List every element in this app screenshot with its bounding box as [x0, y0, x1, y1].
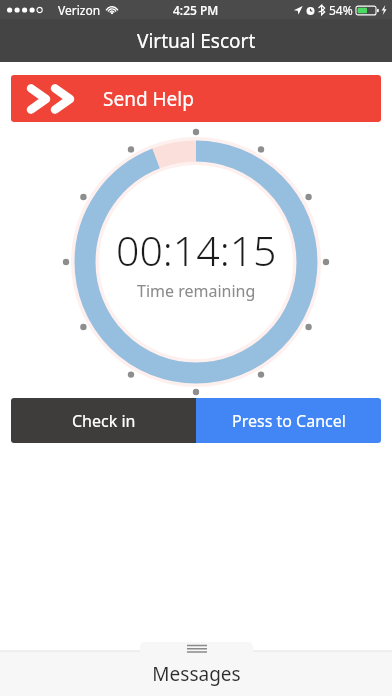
- staticText: Send Help: [103, 86, 194, 112]
- staticText: Check in: [72, 410, 136, 432]
- staticText: Press to Cancel: [232, 410, 346, 432]
- staticText: 00:14:15: [116, 222, 277, 278]
- staticText: Verizon: [58, 2, 101, 18]
- button[interactable]: Check in: [11, 398, 196, 443]
- staticText: Time remaining: [137, 280, 256, 302]
- button[interactable]: Messages: [0, 651, 392, 696]
- staticText: 4:25 PM: [173, 2, 219, 18]
- button[interactable]: Expand messages: [140, 642, 253, 655]
- button[interactable]: Press to Cancel: [196, 398, 381, 443]
- button[interactable]: Send Help: [11, 75, 381, 122]
- staticText: Messages: [152, 661, 241, 687]
- staticText: Virtual Escort: [137, 28, 256, 54]
- staticText: 54%: [329, 2, 353, 18]
